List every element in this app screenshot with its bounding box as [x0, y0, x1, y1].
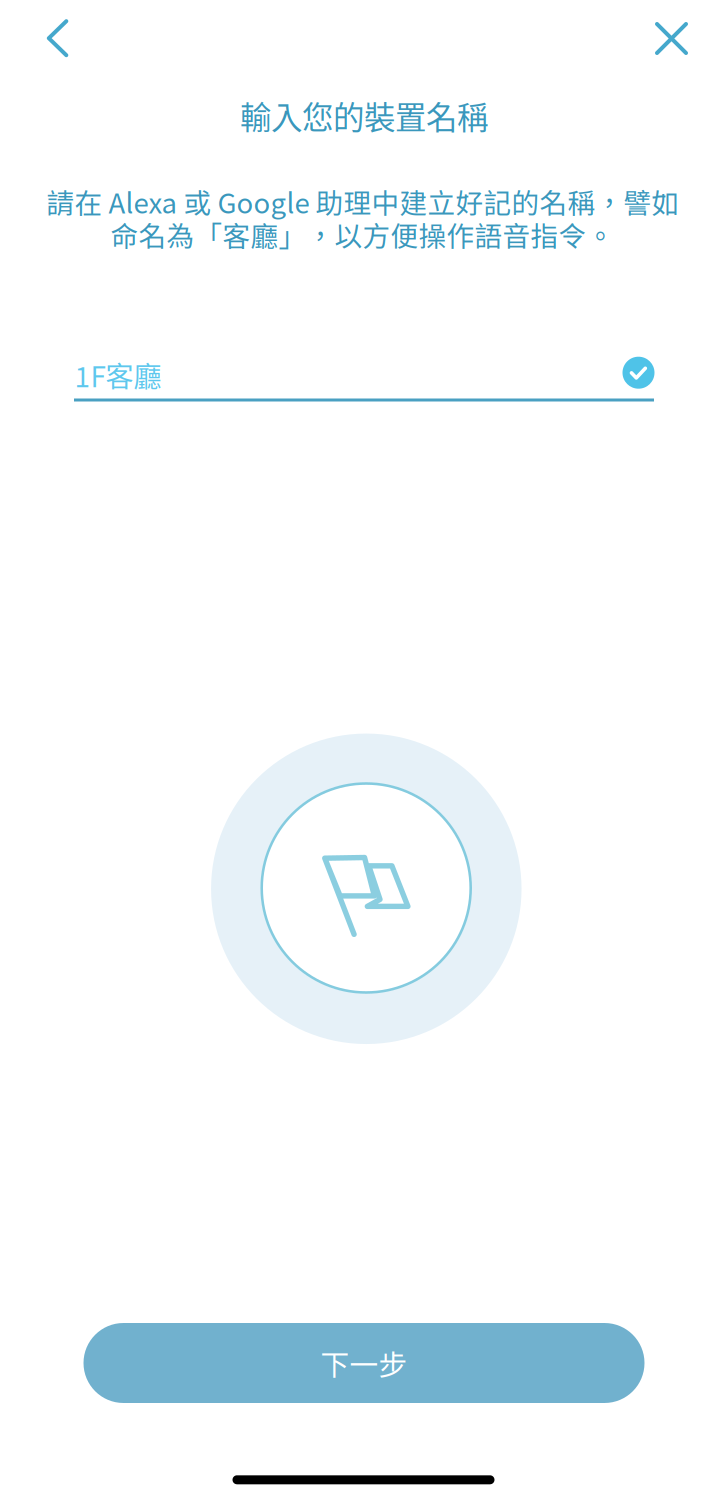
button[interactable]: Device name: [74, 347, 654, 419]
staticText: 1F客廳: [74, 355, 161, 395]
staticText: 請在 Alexa 或 Google 助理中建立好記的名稱，譬如: [46, 181, 679, 221]
button[interactable]: 下一步: [83, 1323, 644, 1403]
staticText: 下一步: [320, 1342, 407, 1384]
button[interactable]: Close: [633, 0, 709, 76]
staticText: 輸入您的裝置名稱: [240, 93, 488, 138]
button[interactable]: Back: [19, 0, 95, 76]
staticText: 命名為「客廳」，以方便操作語音指令。: [110, 214, 614, 254]
